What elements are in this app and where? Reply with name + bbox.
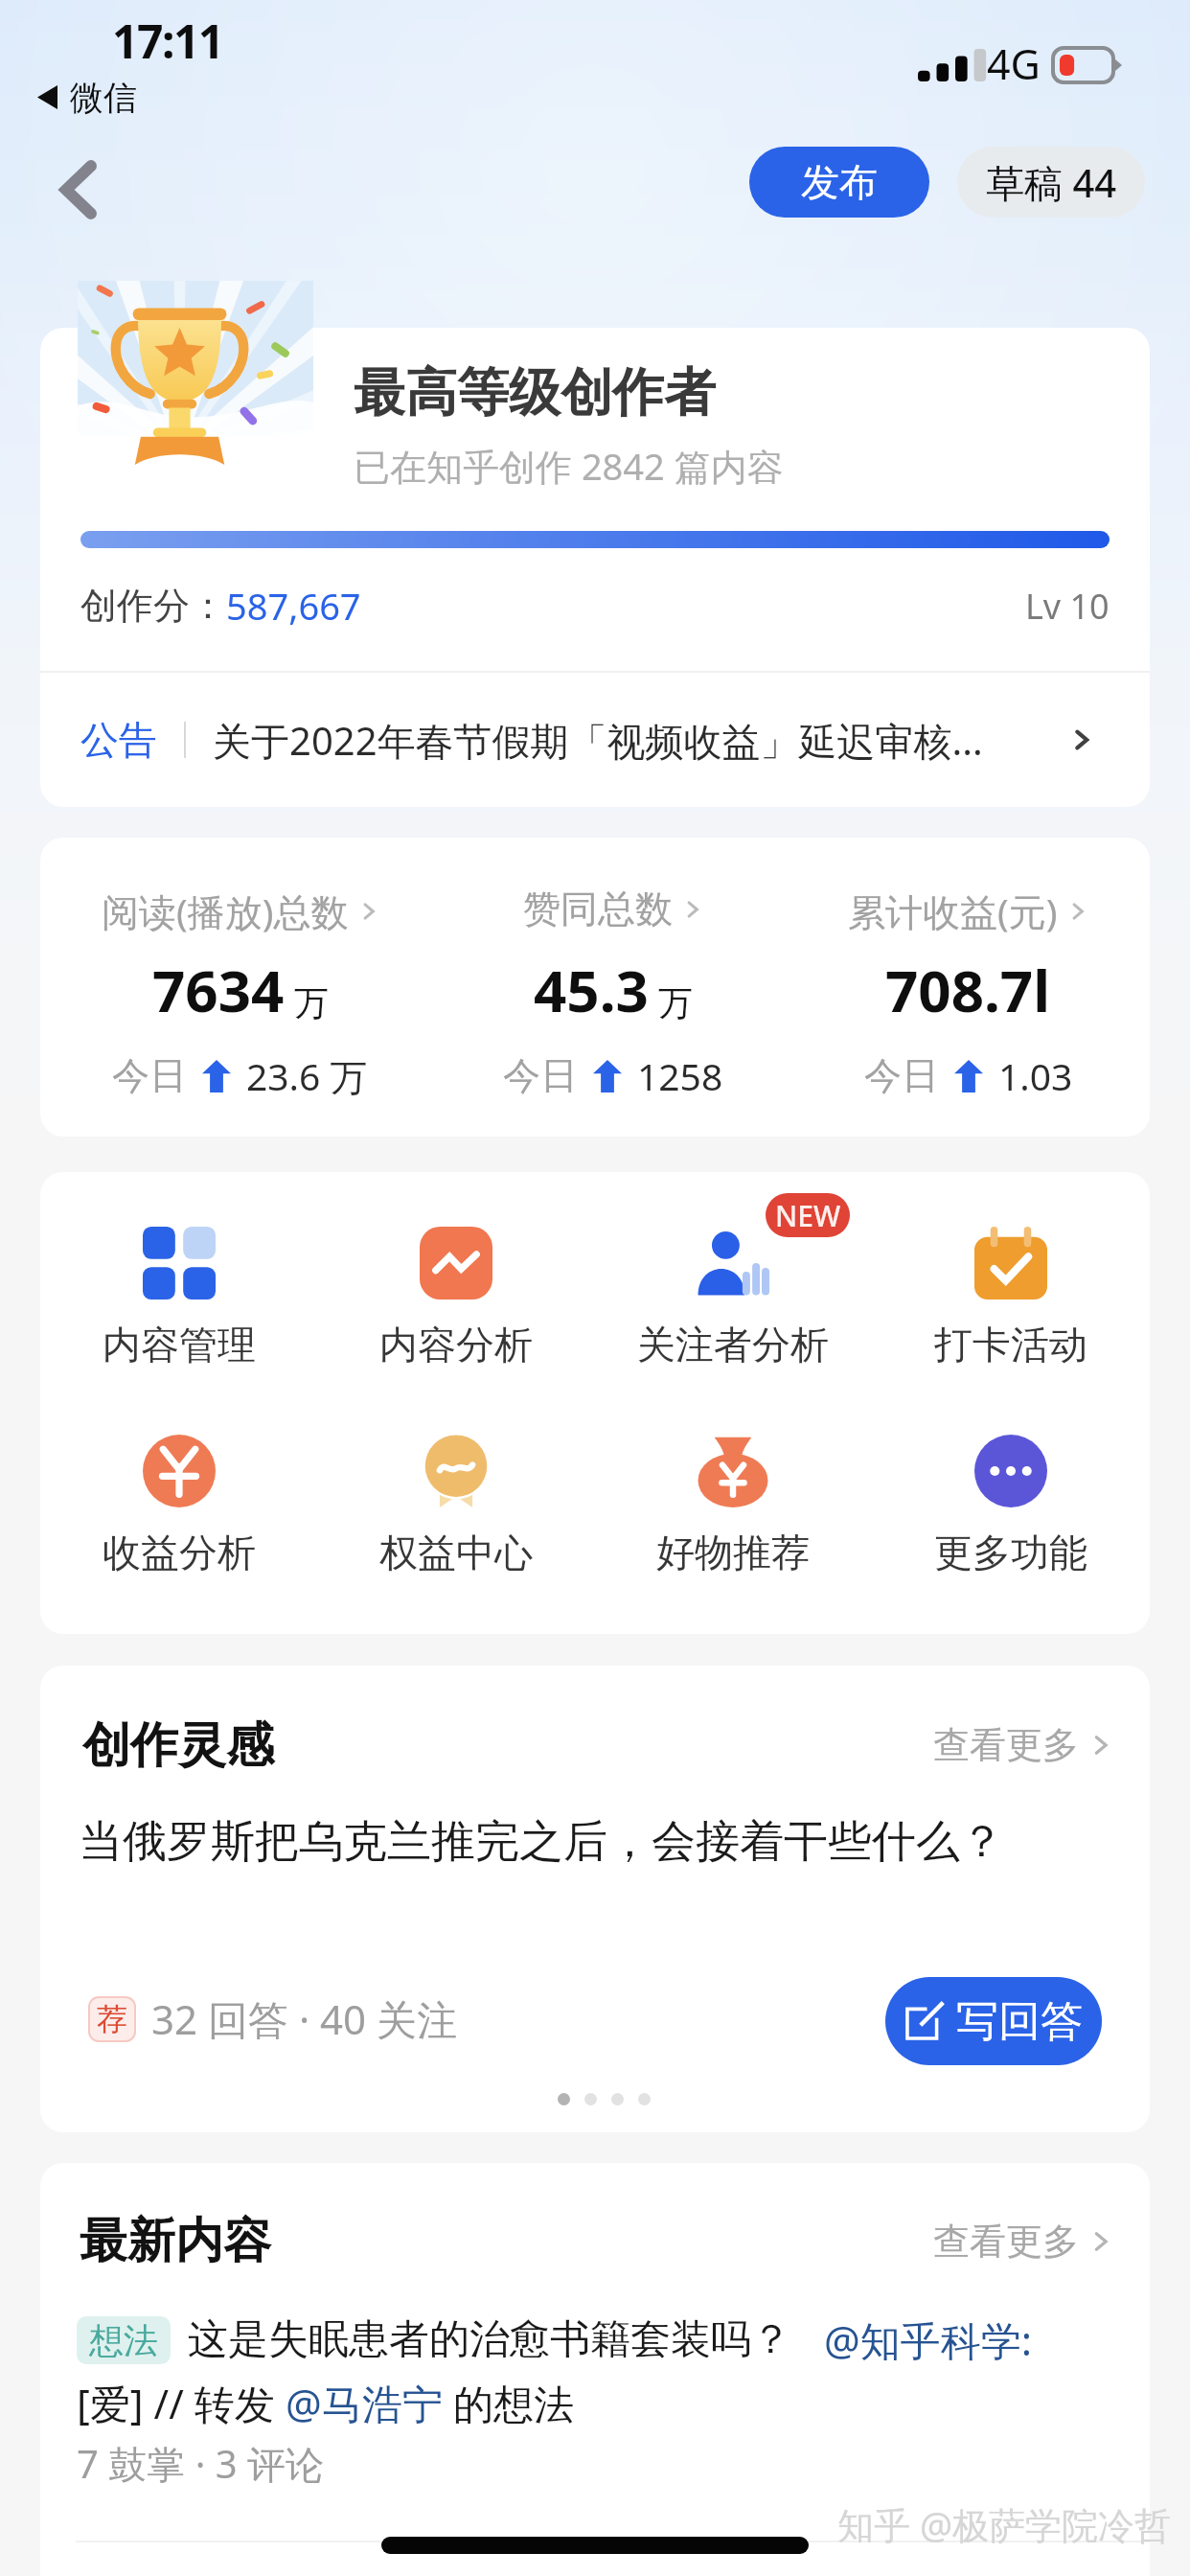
staticText: 1.03 <box>998 1050 1073 1101</box>
staticText: 累计收益(元) <box>848 885 1058 936</box>
staticText: 万 <box>658 981 693 1024</box>
button[interactable]: 好物推荐 <box>594 1435 872 1576</box>
staticText: 想法 <box>89 2319 158 2362</box>
staticText: 收益分析 <box>103 1529 256 1576</box>
staticText: 今日 <box>864 1052 939 1099</box>
staticText: 关注者分析 <box>637 1321 829 1368</box>
staticText: 708.7l <box>885 951 1051 1029</box>
button[interactable]: 查看更多 <box>933 2219 1113 2265</box>
staticText: @马浩宁 <box>286 2376 443 2430</box>
button[interactable]: 发布 <box>749 147 929 218</box>
staticText: 45.3 <box>534 951 649 1029</box>
staticText: 的想法 <box>443 2376 574 2430</box>
staticText: 今日 <box>112 1052 187 1099</box>
button[interactable]: 权益中心 <box>317 1435 594 1576</box>
button[interactable]: 内容分析 <box>317 1227 594 1368</box>
button[interactable]: 打卡活动 <box>872 1227 1150 1368</box>
button[interactable]: 赞同总数 <box>440 838 787 1137</box>
staticText: 荐 <box>97 2000 127 2038</box>
staticText: 已在知乎创作 2842 篇内容 <box>354 441 784 491</box>
button[interactable]: 阅读(播放)总数 <box>40 838 440 1137</box>
staticText: 23.6 万 <box>246 1050 368 1101</box>
staticText: 微信 <box>70 77 137 119</box>
staticText: 17:11 <box>112 10 223 72</box>
staticText: 7634 <box>152 951 285 1029</box>
staticText: [爱] // 转发 <box>77 2376 286 2430</box>
staticText: 更多功能 <box>934 1529 1087 1576</box>
staticText: Lv 10 <box>1025 583 1110 630</box>
button[interactable]: 更多功能 <box>872 1435 1150 1576</box>
staticText: 这是失眠患者的治愈书籍套装吗？ <box>188 2314 791 2365</box>
staticText: 写回答 <box>956 1995 1083 2048</box>
staticText: 7 鼓掌 · 3 评论 <box>77 2437 325 2490</box>
staticText: 创作灵感 <box>82 1715 274 1776</box>
staticText: 今日 <box>503 1052 578 1099</box>
staticText: 阅读(播放)总数 <box>102 885 349 936</box>
staticText: 权益中心 <box>379 1529 533 1576</box>
staticText: 知乎 @极萨学院冷哲 <box>837 2499 1172 2549</box>
staticText: 4G <box>987 35 1041 92</box>
staticText: 创作分： <box>80 583 226 629</box>
button[interactable]: 查看更多 <box>933 1722 1113 1768</box>
button[interactable]: 内容管理 <box>40 1227 317 1368</box>
staticText: @知乎科学: <box>824 2312 1033 2367</box>
staticText: 内容管理 <box>103 1321 256 1368</box>
staticText: 最新内容 <box>80 2211 271 2271</box>
button[interactable]: 写回答 <box>885 1977 1102 2065</box>
button[interactable]: Back <box>29 140 128 240</box>
staticText: 打卡活动 <box>934 1321 1087 1368</box>
staticText: 最高等级创作者 <box>354 360 716 425</box>
staticText: 万 <box>294 981 329 1024</box>
staticText: 587,667 <box>226 581 361 631</box>
staticText: 好物推荐 <box>656 1529 810 1576</box>
staticText: 查看更多 <box>933 1722 1079 1768</box>
button[interactable]: NEW <box>594 1227 872 1368</box>
staticText: 1258 <box>637 1050 723 1101</box>
button[interactable]: 累计收益(元) <box>787 838 1150 1137</box>
staticText: 发布 <box>801 158 878 206</box>
staticText: 草稿 44 <box>986 156 1117 209</box>
staticText: 查看更多 <box>933 2219 1079 2265</box>
staticText: 关于2022年春节假期「视频收益」延迟审核... <box>213 714 983 767</box>
staticText: 32 回答 · 40 关注 <box>151 1991 458 2046</box>
button[interactable]: 草稿 44 <box>957 147 1145 218</box>
staticText: 当俄罗斯把乌克兰推完之后，会接着干些什么？ <box>79 1814 1004 1870</box>
staticText: NEW <box>775 1196 841 1235</box>
button[interactable]: 收益分析 <box>40 1435 317 1576</box>
staticText: 内容分析 <box>379 1321 533 1368</box>
button[interactable]: 公告 <box>40 673 1150 807</box>
staticText: 赞同总数 <box>523 885 673 932</box>
staticText: 公告 <box>80 716 157 764</box>
